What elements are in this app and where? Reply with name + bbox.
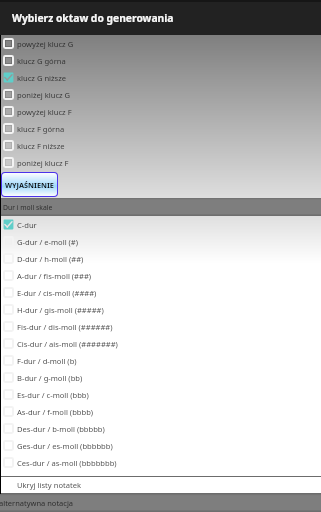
staticText: poniżej klucz F [17,158,69,168]
button[interactable]: Fis-dur / dis-moll (######) [0,318,321,335]
button[interactable]: F-dur / d-moll (b) [0,352,321,369]
staticText: F-dur / d-moll (b) [17,356,77,366]
staticText: Wybierz oktaw do generowania [12,11,174,25]
staticText: Ces-dur / as-moll (bbbbbbb) [17,458,117,468]
staticText: Ges-dur / es-moll (bbbbbb) [17,441,113,451]
button[interactable]: klucz F górna [0,120,321,137]
staticText: D-dur / h-moll (##) [17,254,84,264]
button[interactable]: H-dur / gis-moll (#####) [0,301,321,318]
button[interactable]: klucz G niższe [0,69,321,86]
button[interactable]: WYJAŚNIENIE [2,173,57,196]
staticText: C-dur [17,220,37,230]
button[interactable]: A-dur / fis-moll (###) [0,267,321,284]
staticText: klucz F niższe [17,141,65,151]
staticText: A-dur / fis-moll (###) [17,271,92,281]
button[interactable]: E-dur / cis-moll (####) [0,284,321,301]
staticText: E-dur / cis-moll (####) [17,288,97,298]
staticText: alternatywna notacja [0,498,74,508]
staticText: Des-dur / b-moll (bbbbb) [17,424,105,434]
staticText: Cis-dur / ais-moll (#######) [17,339,118,349]
staticText: Dur i moll skale [3,203,53,212]
staticText: powyżej klucz F [17,107,72,117]
button[interactable]: Ukryj listy notatek [0,477,321,493]
staticText: klucz F górna [17,124,65,134]
button[interactable]: poniżej klucz F [0,154,321,171]
button[interactable]: D-dur / h-moll (##) [0,250,321,267]
staticText: H-dur / gis-moll (#####) [17,305,104,315]
staticText: poniżej klucz G [17,90,71,100]
button[interactable]: Dur i moll skale [0,198,321,216]
staticText: Fis-dur / dis-moll (######) [17,322,113,332]
button[interactable]: poniżej klucz G [0,86,321,103]
staticText: powyżej klucz G [17,39,74,49]
staticText: As-dur / f-moll (bbbb) [17,407,94,417]
button[interactable]: Des-dur / b-moll (bbbbb) [0,420,321,437]
button[interactable]: Es-dur / c-moll (bbb) [0,386,321,403]
staticText: G-dur / e-moll (#) [17,237,79,247]
button[interactable]: powyżej klucz G [0,35,321,52]
staticText: Ukryj listy notatek [17,480,82,490]
button[interactable]: As-dur / f-moll (bbbb) [0,403,321,420]
button[interactable]: Ces-dur / as-moll (bbbbbbb) [0,454,321,471]
staticText: klucz G niższe [17,73,67,83]
button[interactable]: C-dur [0,216,321,233]
staticText: Es-dur / c-moll (bbb) [17,390,89,400]
button[interactable]: G-dur / e-moll (#) [0,233,321,250]
button[interactable]: klucz G górna [0,52,321,69]
staticText: klucz G górna [17,56,66,66]
staticText: WYJAŚNIENIE [5,180,54,190]
button[interactable]: B-dur / g-moll (bb) [0,369,321,386]
staticText: B-dur / g-moll (bb) [17,373,83,383]
button[interactable]: Cis-dur / ais-moll (#######) [0,335,321,352]
button[interactable]: klucz F niższe [0,137,321,154]
button[interactable]: powyżej klucz F [0,103,321,120]
button[interactable]: alternatywna notacja [0,494,321,512]
button[interactable]: Ges-dur / es-moll (bbbbbb) [0,437,321,454]
